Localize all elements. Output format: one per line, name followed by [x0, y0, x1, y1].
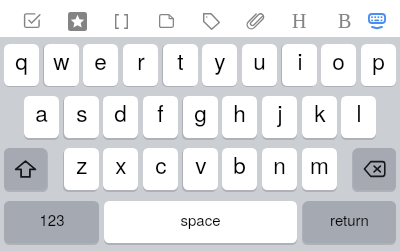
- staticText: a: [35, 96, 48, 128]
- staticText: d: [114, 96, 127, 128]
- staticText: n: [273, 148, 286, 180]
- button[interactable]: n: [262, 148, 297, 190]
- button[interactable]: a: [24, 96, 59, 138]
- staticText: f: [157, 96, 164, 128]
- button[interactable]: c: [143, 148, 178, 190]
- button[interactable]: w: [44, 44, 79, 86]
- staticText: q: [15, 44, 28, 76]
- staticText: B: [338, 10, 352, 32]
- button[interactable]: g: [183, 96, 218, 138]
- button[interactable]: v: [183, 148, 218, 190]
- button[interactable]: k: [302, 96, 337, 138]
- button[interactable]: Bookmark: [56, 3, 98, 39]
- staticText: l: [356, 96, 362, 128]
- button[interactable]: return: [303, 201, 396, 243]
- button[interactable]: Bold: [324, 3, 366, 39]
- staticText: o: [332, 44, 345, 76]
- button[interactable]: 123: [4, 201, 99, 243]
- staticText: k: [314, 96, 326, 128]
- button[interactable]: x: [103, 148, 138, 190]
- button[interactable]: Checklist: [11, 3, 53, 39]
- button[interactable]: j: [262, 96, 297, 138]
- button[interactable]: o: [321, 44, 356, 86]
- button[interactable]: Code block: [100, 3, 142, 39]
- button[interactable]: i: [282, 44, 317, 86]
- staticText: m: [310, 148, 329, 180]
- button[interactable]: New page: [145, 3, 187, 39]
- button[interactable]: l: [341, 96, 376, 138]
- button[interactable]: b: [222, 148, 257, 190]
- button[interactable]: u: [242, 44, 277, 86]
- other: Shift: [15, 160, 36, 178]
- button[interactable]: h: [222, 96, 257, 138]
- staticText: g: [194, 96, 207, 128]
- button[interactable]: r: [123, 44, 158, 86]
- button[interactable]: Heading: [278, 3, 320, 39]
- button[interactable]: Backspace: [353, 148, 396, 190]
- staticText: c: [155, 148, 167, 180]
- button[interactable]: Shift: [4, 148, 47, 190]
- button[interactable]: Attach file: [234, 3, 276, 39]
- staticText: y: [214, 44, 226, 76]
- button[interactable]: f: [143, 96, 178, 138]
- staticText: w: [53, 44, 70, 76]
- staticText: z: [76, 148, 88, 180]
- staticText: i: [297, 44, 303, 76]
- staticText: H: [292, 10, 307, 32]
- button[interactable]: p: [361, 44, 396, 86]
- staticText: p: [372, 44, 385, 76]
- staticText: space: [180, 209, 221, 230]
- button[interactable]: y: [202, 44, 237, 86]
- button[interactable]: s: [64, 96, 99, 138]
- button[interactable]: Tag: [190, 3, 232, 39]
- button[interactable]: t: [163, 44, 198, 86]
- staticText: r: [137, 44, 145, 76]
- staticText: u: [253, 44, 266, 76]
- staticText: t: [177, 44, 184, 76]
- staticText: v: [195, 148, 207, 180]
- button[interactable]: e: [83, 44, 118, 86]
- staticText: s: [76, 96, 88, 128]
- button[interactable]: space: [104, 201, 297, 243]
- staticText: b: [233, 148, 246, 180]
- button[interactable]: z: [64, 148, 99, 190]
- button[interactable]: q: [4, 44, 39, 86]
- other: Backspace: [364, 161, 385, 177]
- staticText: return: [330, 209, 369, 230]
- button[interactable]: Hide keyboard: [356, 3, 398, 39]
- staticText: j: [277, 96, 283, 128]
- staticText: h: [233, 96, 246, 128]
- staticText: 123: [39, 209, 65, 230]
- button[interactable]: d: [103, 96, 138, 138]
- staticText: e: [94, 44, 107, 76]
- button[interactable]: m: [302, 148, 337, 190]
- staticText: x: [115, 148, 127, 180]
